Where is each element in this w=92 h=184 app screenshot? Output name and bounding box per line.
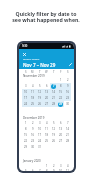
staticText: Quickly filter by date to see what happe… bbox=[12, 10, 80, 24]
staticText: 1 bbox=[25, 121, 27, 125]
staticText: 5 bbox=[53, 121, 55, 125]
staticText: January 2020 bbox=[23, 159, 41, 163]
staticText: SELECT DATES bbox=[23, 58, 40, 61]
staticText: 30 bbox=[66, 102, 70, 106]
staticText: 3 bbox=[25, 84, 27, 88]
staticText: 31 bbox=[38, 145, 42, 149]
staticText: 10 bbox=[59, 169, 63, 171]
staticText: 28 bbox=[66, 139, 70, 143]
staticText: 16 bbox=[31, 133, 35, 137]
staticText: 18 bbox=[31, 96, 35, 100]
staticText: 27 bbox=[45, 102, 49, 106]
staticText: 25 bbox=[31, 102, 35, 106]
staticText: T bbox=[53, 70, 55, 74]
staticText: 6 bbox=[32, 169, 34, 171]
staticText: 5 bbox=[25, 169, 27, 171]
staticText: 1 bbox=[46, 164, 48, 168]
staticText: 2 bbox=[32, 121, 34, 125]
staticText: 23 bbox=[31, 139, 35, 143]
staticText: 9 bbox=[67, 84, 69, 88]
staticText: 9 bbox=[32, 127, 34, 131]
staticText: 3 bbox=[60, 164, 62, 168]
staticText: 11 bbox=[66, 169, 70, 171]
staticText: 6 bbox=[60, 121, 62, 125]
staticText: 15 bbox=[24, 133, 28, 137]
staticText: 9:30 bbox=[22, 44, 28, 48]
staticText: November 2019 bbox=[23, 74, 45, 77]
staticText: 21 bbox=[66, 133, 70, 137]
staticText: 11 bbox=[31, 90, 35, 94]
staticText: 27 bbox=[59, 139, 63, 143]
staticText: 4 bbox=[32, 84, 34, 88]
staticText: 12 bbox=[38, 90, 42, 94]
staticText: Nov 7 – Nov 29 bbox=[23, 62, 56, 68]
staticText: 8 bbox=[46, 169, 48, 171]
staticText: 21 bbox=[52, 96, 56, 100]
staticText: 26 bbox=[52, 139, 56, 143]
staticText: 25 bbox=[45, 139, 49, 143]
staticText: 14 bbox=[66, 127, 70, 131]
staticText: 7 bbox=[53, 84, 55, 88]
staticText: 19 bbox=[38, 96, 42, 100]
staticText: W bbox=[45, 70, 48, 74]
staticText: 20 bbox=[59, 133, 63, 137]
staticText: 8 bbox=[60, 84, 62, 88]
staticText: 4 bbox=[46, 121, 48, 125]
staticText: S bbox=[67, 70, 69, 74]
staticText: 5 bbox=[39, 84, 41, 88]
staticText: 16 bbox=[66, 90, 70, 94]
staticText: 3 bbox=[39, 121, 41, 125]
staticText: 28 bbox=[52, 102, 56, 106]
staticText: 24 bbox=[38, 139, 42, 143]
staticText: 20 bbox=[45, 96, 49, 100]
staticText: December 2019 bbox=[23, 116, 45, 120]
staticText: 13 bbox=[59, 127, 63, 131]
staticText: 18 bbox=[45, 133, 49, 137]
staticText: 6 bbox=[46, 84, 48, 88]
button[interactable]: Edit bbox=[67, 61, 73, 67]
staticText: T bbox=[39, 70, 41, 74]
staticText: 30 bbox=[31, 145, 35, 149]
staticText: 14 bbox=[52, 90, 56, 94]
button[interactable]: Close bbox=[21, 51, 27, 57]
staticText: 19 bbox=[52, 133, 56, 137]
staticText: 15 bbox=[59, 90, 63, 94]
staticText: 13 bbox=[45, 90, 49, 94]
staticText: 11 bbox=[45, 127, 49, 131]
staticText: 8 bbox=[25, 127, 27, 131]
staticText: F bbox=[60, 70, 62, 74]
staticText: 10 bbox=[24, 90, 28, 94]
staticText: 29 bbox=[59, 102, 63, 106]
staticText: 23 bbox=[66, 96, 70, 100]
staticText: 10 bbox=[38, 127, 42, 131]
staticText: 4 bbox=[67, 164, 69, 168]
staticText: 29 bbox=[24, 145, 28, 149]
staticText: 2 bbox=[67, 78, 69, 82]
staticText: 24 bbox=[24, 102, 28, 106]
staticText: 12 bbox=[52, 127, 56, 131]
staticText: 22 bbox=[24, 139, 28, 143]
staticText: M bbox=[31, 70, 34, 74]
staticText: 7 bbox=[67, 121, 69, 125]
staticText: 2 bbox=[53, 164, 55, 168]
staticText: S bbox=[25, 70, 27, 74]
staticText: 1 bbox=[60, 78, 62, 82]
staticText: 9 bbox=[53, 169, 55, 171]
staticText: 7 bbox=[39, 169, 41, 171]
staticText: 26 bbox=[38, 102, 42, 106]
staticText: 22 bbox=[59, 96, 63, 100]
staticText: 17 bbox=[24, 96, 28, 100]
staticText: 17 bbox=[38, 133, 42, 137]
